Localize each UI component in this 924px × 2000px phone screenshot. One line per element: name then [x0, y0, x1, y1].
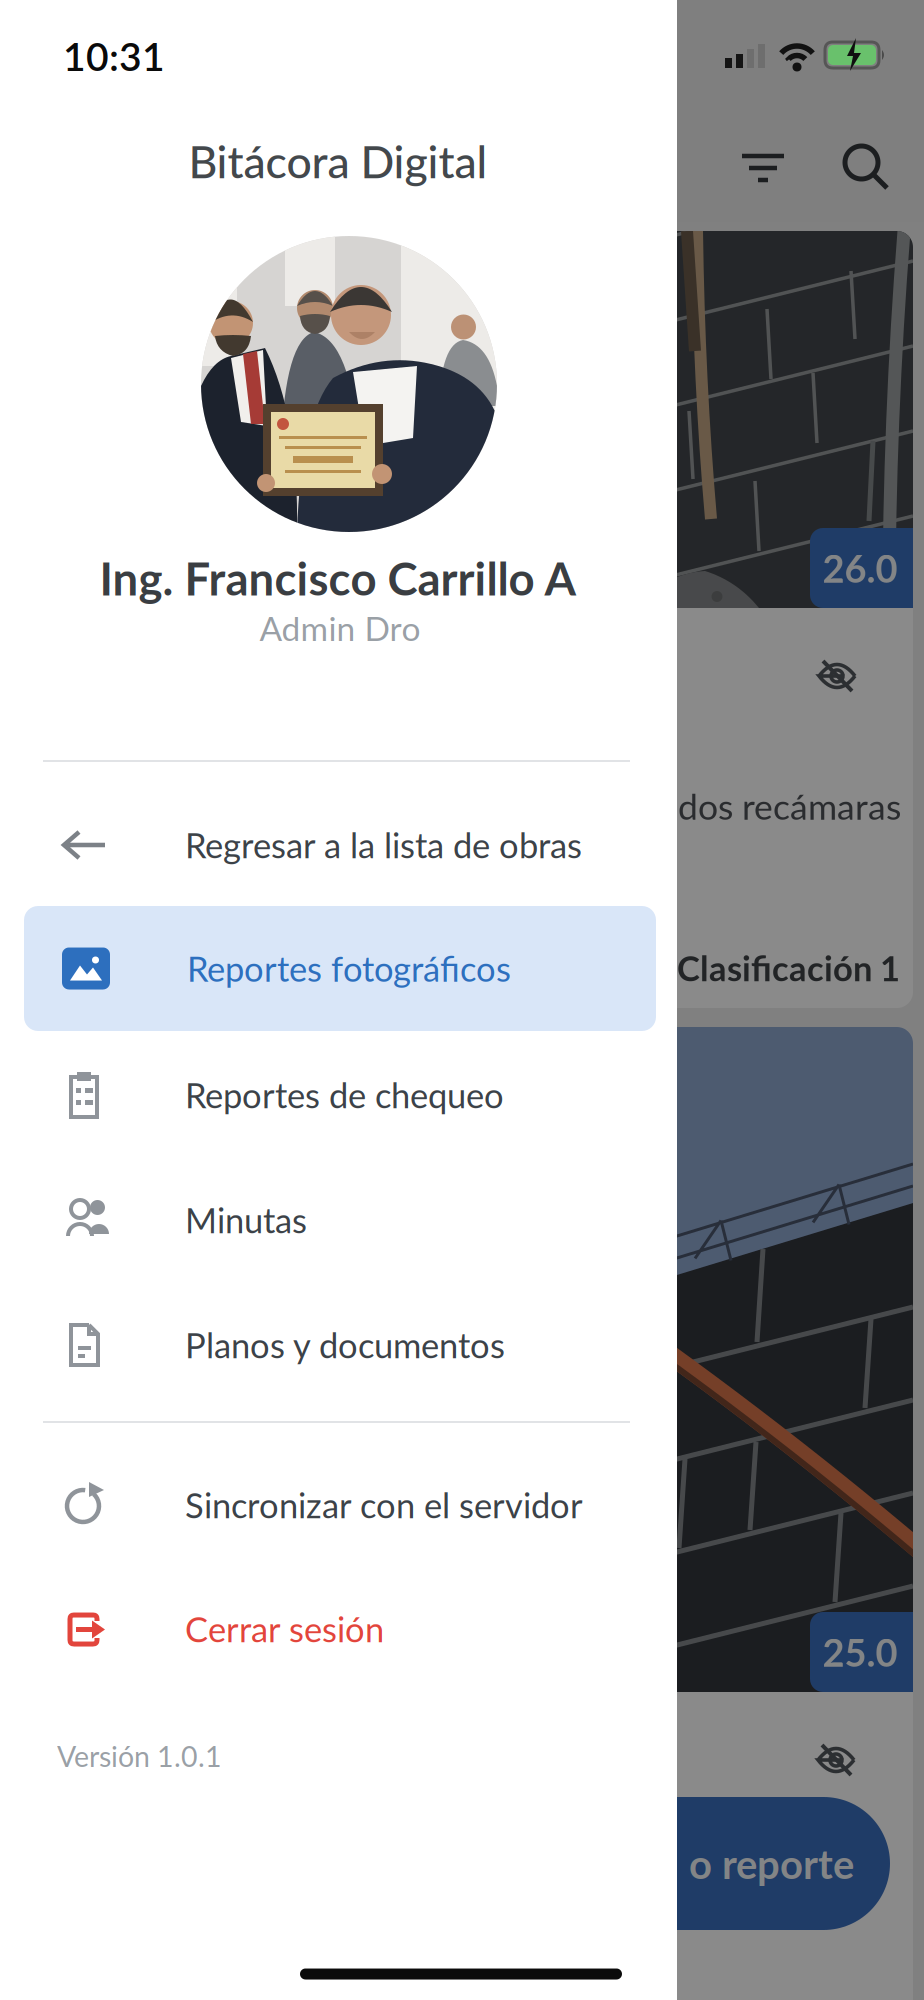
staticText: Cerrar sesión — [185, 1608, 384, 1650]
button[interactable]: Nuevo reporte — [550, 1797, 890, 1930]
staticText: Minutas — [185, 1199, 307, 1241]
button[interactable]: Ocultar reporte — [815, 1743, 857, 1777]
staticText: Reportes fotográficos — [187, 948, 511, 989]
button[interactable]: Ocultar reporte — [816, 659, 858, 693]
staticText: Reportes de chequeo — [185, 1074, 504, 1116]
staticText: Regresar a la lista de obras — [185, 824, 582, 866]
button[interactable]: Sincronizar con el servidor — [10, 1442, 666, 1567]
staticText: 26.0 — [822, 545, 897, 591]
staticText: Bitácora Digital — [188, 134, 487, 188]
button[interactable]: Planos y documentos — [10, 1282, 666, 1407]
staticText: Versión 1.0.1 — [57, 1739, 222, 1773]
staticText: dos recámaras — [678, 785, 901, 827]
button[interactable]: Reportes fotográficos — [12, 906, 668, 1031]
button[interactable]: Reportes de chequeo — [10, 1032, 666, 1157]
staticText: Admin Dro — [259, 608, 420, 648]
button[interactable]: Regresar a la lista de obras — [10, 782, 666, 907]
staticText: Sincronizar con el servidor — [185, 1484, 583, 1526]
staticText: 10:31 — [63, 33, 165, 79]
button[interactable]: Minutas — [10, 1157, 666, 1282]
staticText: Planos y documentos — [185, 1324, 505, 1366]
staticText: 25.0 — [822, 1629, 897, 1675]
button[interactable]: Buscar — [841, 142, 893, 194]
button[interactable]: Cerrar sesión — [10, 1566, 666, 1691]
staticText: Clasificación 1 — [677, 947, 900, 989]
staticText: Ing. Francisco Carrillo A — [99, 551, 576, 605]
staticText: o reporte — [689, 1839, 854, 1887]
button[interactable]: Filtrar — [735, 149, 791, 189]
